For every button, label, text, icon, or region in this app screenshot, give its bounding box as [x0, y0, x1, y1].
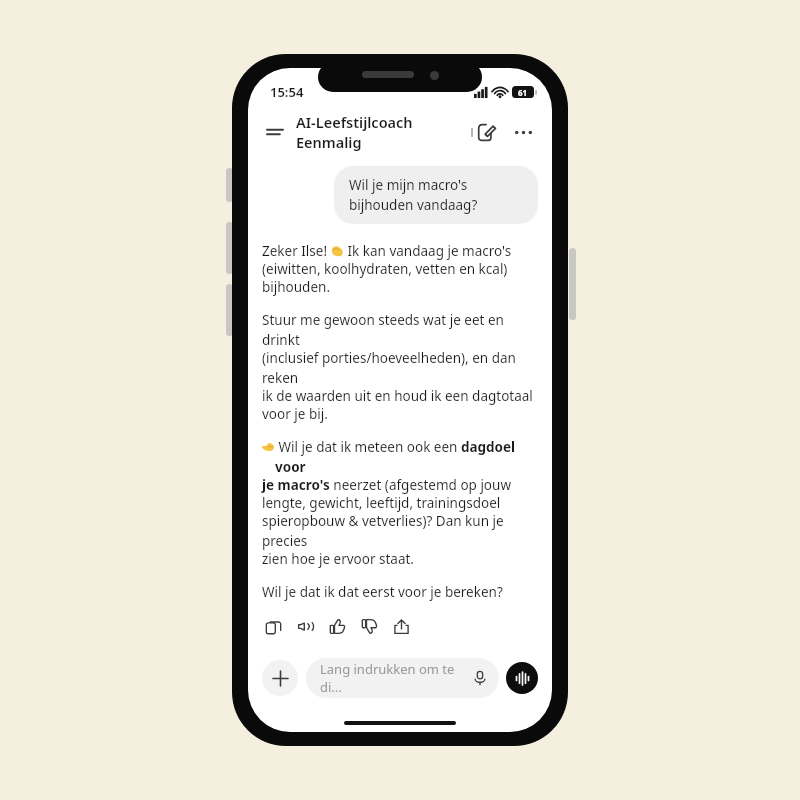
staticText: (inclusief porties/hoeveelheden), en dan…	[262, 349, 538, 387]
staticText: spieropbouw & vetverlies)? Dan kun je pr…	[262, 512, 538, 550]
button[interactable]: Add attachment	[262, 660, 298, 696]
button[interactable]: Copy	[262, 615, 284, 637]
staticText: Wil je dat ik meteen ook een dagdoel voo…	[275, 438, 538, 476]
staticText: je macro's neerzet (afgestemd op jouw	[262, 476, 511, 494]
button[interactable]: New chat	[472, 117, 502, 147]
staticText: AI-Leefstijlcoach Eenmalig	[296, 112, 472, 152]
staticText: Stuur me gewoon steeds wat je eet en dri…	[262, 311, 538, 349]
staticText: ik de waarden uit en houd ik een dagtota…	[262, 387, 533, 405]
staticText: 15:54	[270, 83, 304, 101]
staticText: 61	[518, 87, 528, 98]
staticText: (eiwitten, koolhydraten, vetten en kcal)	[262, 260, 508, 278]
button[interactable]: Wil je mijn macro's bijhouden vandaag?	[334, 166, 538, 224]
button[interactable]: Lang indrukken om te di...	[306, 658, 499, 698]
button[interactable]: Share	[390, 615, 412, 637]
staticText: Ik kan vandaag je macro's	[344, 242, 512, 260]
staticText: Wil je mijn macro's bijhouden vandaag?	[349, 176, 523, 214]
button[interactable]: Bad response	[358, 615, 380, 637]
staticText: Lang indrukken om te di...	[320, 660, 469, 696]
staticText: zien hoe je ervoor staat.	[262, 550, 414, 568]
button[interactable]: Voice input	[469, 667, 491, 689]
staticText: Zeker Ilse!	[262, 242, 331, 260]
button[interactable]: Voice mode	[506, 662, 538, 694]
staticText: voor je bij.	[262, 405, 328, 423]
button[interactable]: Read aloud	[294, 615, 316, 637]
button[interactable]: Good response	[326, 615, 348, 637]
button[interactable]: More options	[508, 117, 538, 147]
staticText: lengte, gewicht, leeftijd, trainingsdoel	[262, 494, 501, 512]
staticText: Wil je dat ik dat eerst voor je bereken?	[262, 583, 503, 601]
button[interactable]: Menu	[262, 119, 288, 145]
button[interactable]: AI-Leefstijlcoach Eenmalig	[296, 112, 472, 152]
staticText: bijhouden.	[262, 278, 330, 296]
